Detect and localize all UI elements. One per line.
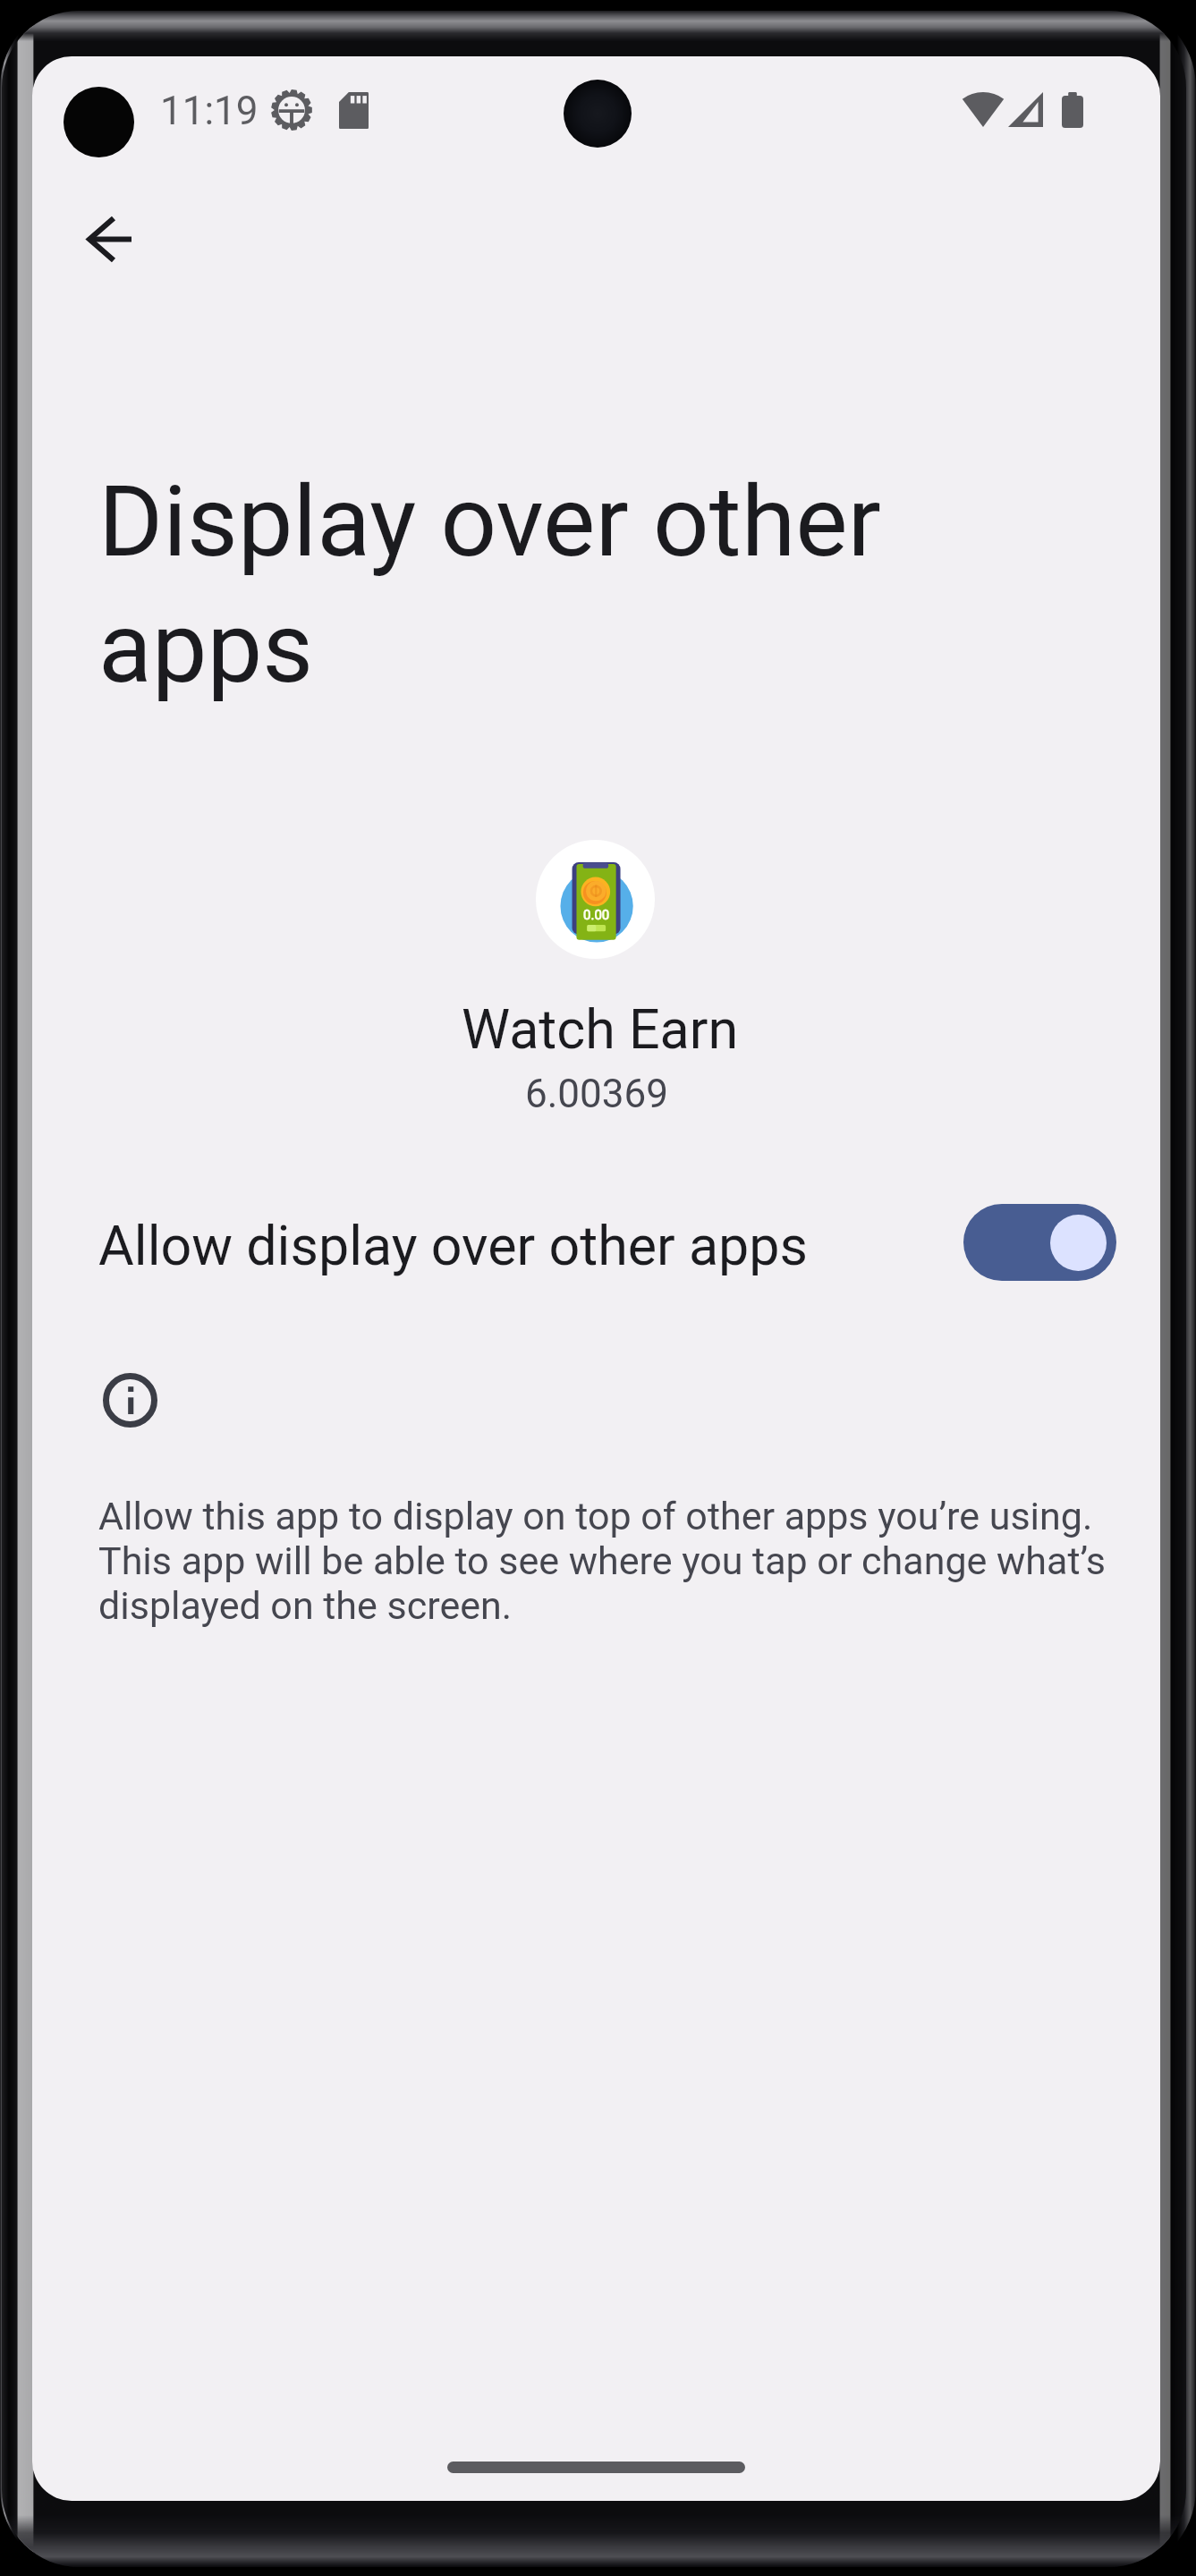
staticText: Display over other apps [98, 464, 993, 708]
staticText: Allow this app to display on top of othe… [98, 1494, 1141, 1628]
staticText: 11:19 [160, 88, 259, 134]
button[interactable]: Allow display over other apps [963, 1204, 1116, 1281]
staticText: Allow display over other apps [98, 1214, 962, 1277]
staticText: Watch Earn [462, 997, 739, 1061]
staticText: 0.00 [583, 907, 610, 923]
button[interactable]: Back [65, 196, 152, 283]
staticText: 6.00369 [525, 1071, 668, 1117]
button[interactable]: Allow display over other apps [32, 1177, 1160, 1308]
